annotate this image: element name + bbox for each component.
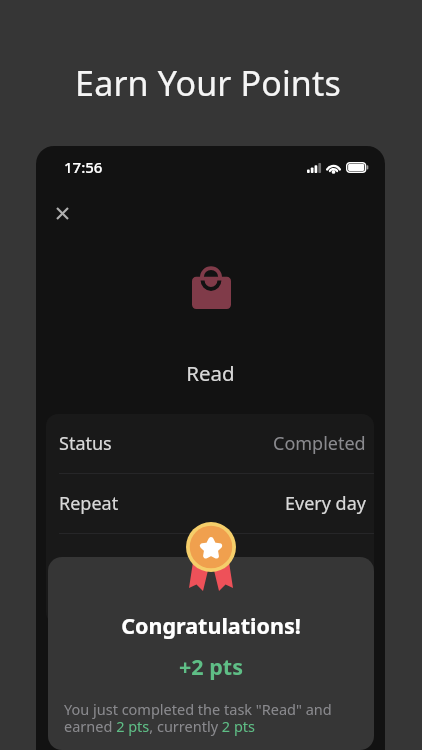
staticText: Earn Your Points <box>0 60 419 106</box>
staticText: Completed <box>273 431 366 456</box>
staticText: Repeat <box>59 491 119 516</box>
staticText: Every day <box>285 491 366 516</box>
staticText: Congratulations! <box>48 611 374 640</box>
staticText: Read <box>36 359 385 387</box>
staticText: 17:56 <box>64 157 103 177</box>
button[interactable]: Points <box>46 534 374 624</box>
button[interactable]: Status <box>46 414 374 473</box>
staticText: Status <box>59 431 112 456</box>
staticText: You just completed the task "Read" and e… <box>64 699 354 736</box>
button[interactable]: Repeat <box>46 474 374 533</box>
staticText: +2 pts <box>48 652 374 681</box>
button[interactable]: Close <box>42 193 82 233</box>
